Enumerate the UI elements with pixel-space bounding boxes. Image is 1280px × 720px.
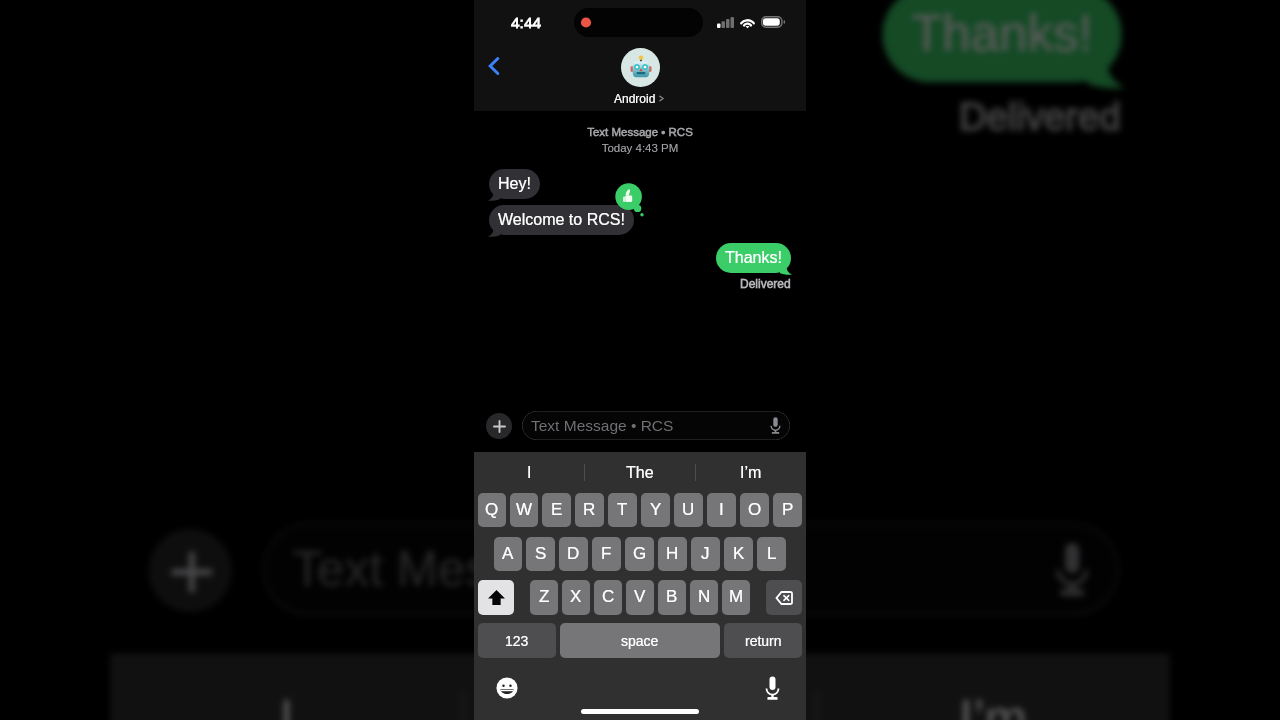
staticText: O xyxy=(748,500,762,519)
staticText: W xyxy=(516,500,533,519)
button[interactable]: R xyxy=(575,493,604,527)
button[interactable]: T xyxy=(608,493,637,527)
button[interactable]: H xyxy=(658,537,687,571)
staticText: The xyxy=(626,464,654,482)
staticText: L xyxy=(767,544,777,563)
staticText: E xyxy=(551,500,563,519)
staticText: G xyxy=(633,544,647,563)
button[interactable]: Android xyxy=(614,48,666,105)
button[interactable]: G xyxy=(625,537,654,571)
button[interactable]: S xyxy=(526,537,555,571)
staticText: return xyxy=(745,633,782,649)
button[interactable]: Thanks! xyxy=(882,0,1122,82)
button[interactable]: return xyxy=(724,623,802,658)
button[interactable]: P xyxy=(773,493,802,527)
staticText: C xyxy=(602,587,615,606)
button[interactable]: Dictation xyxy=(765,676,780,700)
button[interactable]: O xyxy=(740,493,769,527)
button[interactable]: E xyxy=(542,493,571,527)
staticText: Delivered xyxy=(740,277,791,290)
button[interactable]: Q xyxy=(478,493,506,527)
button[interactable]: V xyxy=(626,580,654,615)
button[interactable]: B xyxy=(658,580,686,615)
button[interactable]: C xyxy=(594,580,622,615)
staticText: S xyxy=(535,544,547,563)
staticText: Thanks! xyxy=(725,249,782,267)
button[interactable]: W xyxy=(510,493,538,527)
staticText: U xyxy=(682,500,695,519)
staticText: B xyxy=(666,587,678,606)
staticText: T xyxy=(617,500,628,519)
staticText: Android xyxy=(614,92,656,105)
button[interactable]: F xyxy=(592,537,621,571)
button[interactable]: Thanks! xyxy=(716,243,791,273)
staticText: F xyxy=(601,544,612,563)
staticText: Text Message • RCS xyxy=(474,126,806,139)
button[interactable]: Z xyxy=(530,580,558,615)
staticText: Welcome to RCS! xyxy=(498,211,625,229)
staticText: J xyxy=(701,544,710,563)
button[interactable]: Emoji xyxy=(496,677,518,699)
button[interactable]: I xyxy=(707,493,736,527)
staticText: I’m xyxy=(959,692,1029,720)
staticText: Z xyxy=(539,587,550,606)
button[interactable]: Backspace xyxy=(766,580,802,615)
button[interactable]: Hey! xyxy=(489,169,540,199)
button[interactable]: 123 xyxy=(478,623,556,658)
staticText: Text Message • RCS xyxy=(292,542,748,596)
button[interactable]: Add attachment xyxy=(486,413,512,439)
staticText: Delivered xyxy=(959,95,1122,137)
button[interactable]: N xyxy=(690,580,718,615)
staticText: Text Message • RCS xyxy=(531,417,674,434)
staticText: M xyxy=(729,587,744,606)
button[interactable]: Y xyxy=(641,493,670,527)
staticText: The xyxy=(595,692,685,720)
button[interactable]: space xyxy=(560,623,720,658)
staticText: Q xyxy=(485,500,499,519)
staticText: I xyxy=(279,692,295,720)
button[interactable]: Add attachment xyxy=(149,529,232,612)
button[interactable]: J xyxy=(691,537,720,571)
button[interactable]: I’m xyxy=(819,653,1169,720)
staticText: X xyxy=(570,587,582,606)
staticText: A xyxy=(502,544,514,563)
button[interactable]: A xyxy=(494,537,522,571)
button[interactable]: The xyxy=(585,452,695,493)
button[interactable]: D xyxy=(559,537,588,571)
staticText: V xyxy=(634,587,646,606)
button[interactable]: L xyxy=(757,537,786,571)
button[interactable]: Text Message • RCS xyxy=(522,411,790,440)
staticText: D xyxy=(567,544,580,563)
button[interactable]: The xyxy=(464,653,815,720)
staticText: 4:44 xyxy=(511,14,542,31)
button[interactable]: X xyxy=(562,580,590,615)
staticText: space xyxy=(621,633,659,649)
button[interactable]: Voice input xyxy=(770,417,781,434)
button[interactable]: Text Message • RCS xyxy=(264,523,1118,615)
staticText: I xyxy=(527,464,532,482)
staticText: Today 4:43 PM xyxy=(474,142,806,155)
staticText: Thanks! xyxy=(911,6,1093,63)
button[interactable]: I’m xyxy=(696,452,806,493)
button[interactable]: Thumbs up reaction xyxy=(615,183,651,219)
staticText: P xyxy=(782,500,794,519)
button[interactable]: Welcome to RCS! xyxy=(489,205,634,235)
button[interactable]: Back xyxy=(474,46,514,86)
staticText: N xyxy=(698,587,711,606)
button[interactable]: K xyxy=(724,537,753,571)
staticText: I’m xyxy=(740,464,762,482)
staticText: Hey! xyxy=(498,175,531,193)
button[interactable]: Voice input xyxy=(1055,542,1090,596)
staticText: H xyxy=(666,544,679,563)
button[interactable]: I xyxy=(474,452,584,493)
staticText: 123 xyxy=(505,633,529,649)
staticText: R xyxy=(583,500,596,519)
button[interactable]: U xyxy=(674,493,703,527)
staticText: I xyxy=(719,500,724,519)
staticText: K xyxy=(733,544,745,563)
button[interactable]: I xyxy=(110,653,461,720)
staticText: Y xyxy=(650,500,662,519)
button[interactable]: Shift xyxy=(478,580,514,615)
button[interactable]: M xyxy=(722,580,750,615)
